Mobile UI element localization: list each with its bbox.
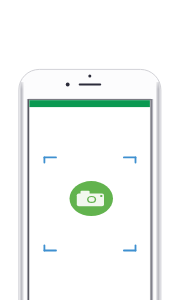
button[interactable]: Take photo: [0, 0, 180, 300]
